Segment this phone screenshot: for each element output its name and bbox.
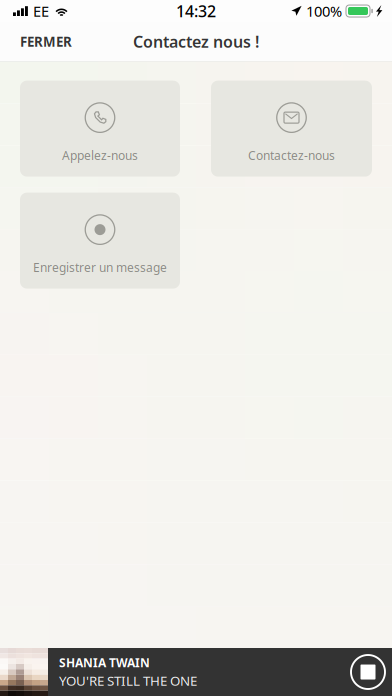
staticText: FERMER (20, 33, 72, 50)
button[interactable]: Stop (344, 648, 392, 696)
staticText: EE (33, 1, 49, 21)
staticText: Appelez-nous (62, 147, 138, 163)
button[interactable]: Contactez-nous (211, 81, 372, 177)
staticText: YOU'RE STILL THE ONE (59, 672, 197, 689)
button[interactable]: Enregistrer un message (20, 193, 180, 289)
button[interactable]: Appelez-nous (20, 81, 180, 177)
staticText: 14:32 (176, 0, 216, 22)
staticText: Enregistrer un message (33, 259, 167, 275)
staticText: Contactez-nous (248, 147, 335, 163)
staticText: SHANIA TWAIN (59, 655, 150, 671)
staticText: 100% (306, 1, 342, 21)
staticText: Contactez nous ! (133, 31, 259, 52)
button[interactable]: FERMER (0, 21, 92, 62)
